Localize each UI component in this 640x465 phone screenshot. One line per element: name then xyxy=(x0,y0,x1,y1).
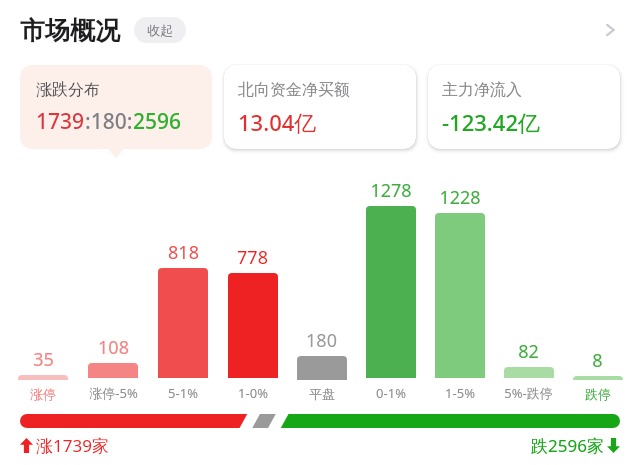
staticText: :180: xyxy=(85,107,133,136)
staticText: 涨停 xyxy=(30,386,56,402)
staticText: 1739 xyxy=(36,107,85,136)
staticText: 5-1% xyxy=(168,384,198,402)
staticText: 收起 xyxy=(147,22,173,38)
staticText: 涨停-5% xyxy=(89,384,138,402)
staticText: 涨跌分布 xyxy=(36,80,100,100)
staticText: 跌2596家 xyxy=(531,434,604,457)
staticText: 82 xyxy=(518,339,539,364)
staticText: 8 xyxy=(592,348,603,373)
staticText: 35 xyxy=(33,347,54,372)
staticText: 1228 xyxy=(439,185,481,210)
staticText: 180 xyxy=(306,328,337,353)
button[interactable]: 北向资金净买额 xyxy=(224,65,416,149)
staticText: 市场概况 xyxy=(20,15,120,46)
staticText: 北向资金净买额 xyxy=(238,80,350,100)
staticText: -123.42亿 xyxy=(442,107,540,137)
staticText: 涨1739家 xyxy=(36,434,109,457)
staticText: 0-1% xyxy=(376,384,406,402)
staticText: 778 xyxy=(237,245,268,270)
staticText: 2596 xyxy=(133,107,182,136)
button[interactable]: 主力净流入 xyxy=(428,65,620,149)
button[interactable]: More xyxy=(588,8,632,52)
staticText: 跌停 xyxy=(585,386,611,402)
staticText: 平盘 xyxy=(309,386,335,402)
staticText: 13.04亿 xyxy=(238,107,317,137)
staticText: 108 xyxy=(98,335,129,360)
staticText: 5%-跌停 xyxy=(504,384,553,402)
staticText: 1-5% xyxy=(445,384,475,402)
button[interactable]: 涨跌分布 xyxy=(20,65,212,149)
staticText: 主力净流入 xyxy=(442,80,522,100)
staticText: 818 xyxy=(168,240,199,265)
staticText: 1278 xyxy=(370,178,412,203)
staticText: 1-0% xyxy=(238,384,268,402)
button[interactable]: 收起 xyxy=(134,17,186,43)
